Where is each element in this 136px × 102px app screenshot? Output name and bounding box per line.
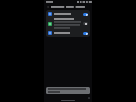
button[interactable]: Toggle	[83, 22, 88, 25]
button[interactable]: Back	[46, 5, 50, 9]
button[interactable]: Toggle	[46, 29, 90, 37]
button[interactable]: Toggle	[46, 18, 90, 29]
button[interactable]	[46, 87, 90, 94]
button[interactable]: Toggle	[46, 10, 90, 18]
button[interactable]: Toggle	[83, 32, 88, 35]
button[interactable]: Toggle	[83, 13, 88, 16]
